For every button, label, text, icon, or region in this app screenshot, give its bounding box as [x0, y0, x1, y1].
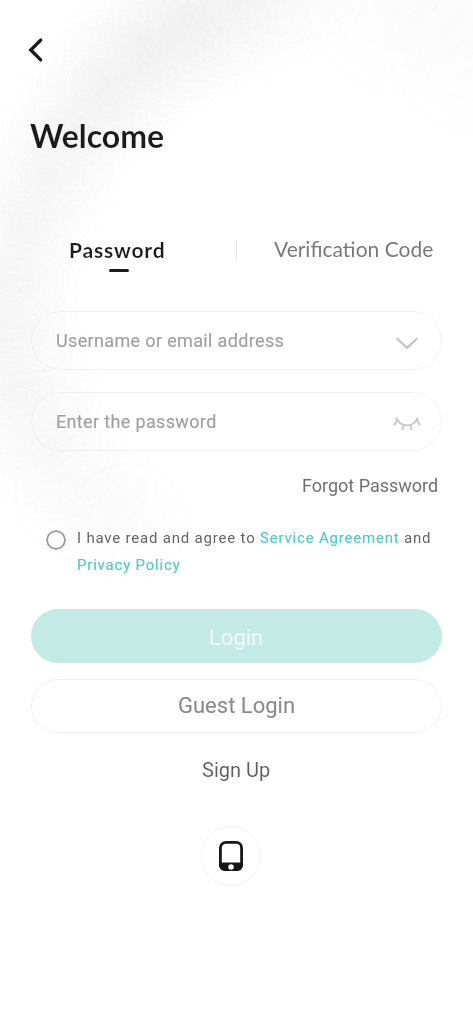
- button[interactable]: Agree to the service agreement: [46, 530, 66, 550]
- button[interactable]: Show saved accounts: [394, 328, 420, 354]
- button[interactable]: Verification Code: [254, 236, 454, 270]
- staticText: Username or email address: [56, 330, 285, 351]
- button[interactable]: Show password: [394, 409, 420, 435]
- staticText: Forgot Password: [302, 475, 439, 496]
- button[interactable]: Forgot Password: [302, 475, 439, 496]
- staticText: Password: [69, 237, 166, 262]
- staticText: I have read and agree to Service Agreeme…: [77, 529, 444, 574]
- button[interactable]: Back: [14, 28, 58, 72]
- button[interactable]: Sign Up: [202, 758, 271, 781]
- button[interactable]: Enter the password: [31, 392, 442, 451]
- button[interactable]: Login with device: [201, 826, 261, 886]
- staticText: Enter the password: [56, 411, 217, 432]
- button[interactable]: Guest Login: [31, 679, 442, 733]
- button[interactable]: Login: [31, 609, 442, 663]
- staticText: Guest Login: [178, 693, 296, 719]
- staticText: Welcome: [30, 116, 165, 154]
- button[interactable]: Username or email address: [31, 311, 442, 370]
- button[interactable]: Password: [36, 237, 199, 277]
- staticText: Verification Code: [274, 236, 434, 261]
- staticText: Sign Up: [202, 758, 271, 781]
- staticText: Login: [209, 625, 264, 651]
